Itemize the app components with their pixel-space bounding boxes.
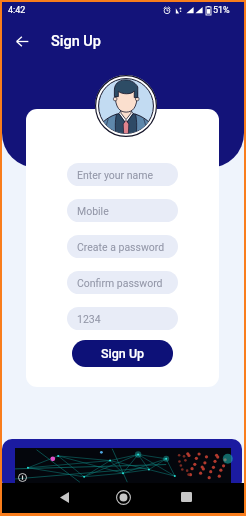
button[interactable]: Back <box>2 21 42 61</box>
button[interactable]: Confirm password <box>67 271 178 294</box>
staticText: Sign Up <box>51 33 101 50</box>
button[interactable]: Create a password <box>67 235 178 258</box>
staticText: Sign Up <box>101 346 145 361</box>
button[interactable]: Advertisement <box>2 439 242 491</box>
staticText: Mobile <box>77 205 109 217</box>
staticText: 1234 <box>77 313 101 325</box>
button[interactable]: Mobile <box>67 199 178 222</box>
button[interactable]: 1234 <box>67 307 178 330</box>
button[interactable]: Recent apps <box>172 483 200 511</box>
staticText: 4:42 <box>8 5 26 16</box>
staticText: Enter your name <box>77 169 154 181</box>
staticText: 51% <box>213 5 230 16</box>
staticText: Create a password <box>77 241 165 253</box>
button[interactable]: Back <box>50 483 78 511</box>
button[interactable]: Sign Up <box>72 340 173 367</box>
button[interactable]: Enter your name <box>67 163 178 186</box>
staticText: Confirm password <box>77 277 163 289</box>
button[interactable]: Home <box>109 483 137 511</box>
